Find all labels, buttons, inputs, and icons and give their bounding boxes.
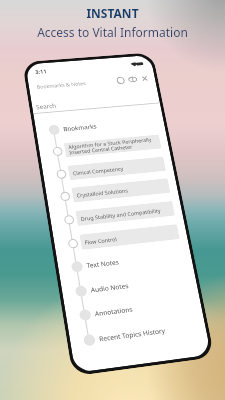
- staticText: Bookmarks: [63, 122, 97, 133]
- staticText: Algorithm for a Stuck Peripherally Inser…: [68, 136, 159, 156]
- button[interactable]: Text Notes: [57, 246, 192, 276]
- staticText: Search: [35, 101, 57, 111]
- button[interactable]: Drug Stability and Compatibility: [49, 199, 183, 230]
- button[interactable]: Recent Topics History: [69, 317, 207, 350]
- button[interactable]: Clinical Competency: [42, 155, 174, 184]
- staticText: Clinical Competency: [72, 165, 124, 176]
- button[interactable]: Algorithm for a Stuck Peripherally Inser…: [38, 133, 169, 161]
- button[interactable]: Search: [32, 93, 160, 114]
- staticText: Bookmarks & Notes: [36, 80, 86, 90]
- staticText: Recent Topics History: [98, 326, 167, 343]
- staticText: Text Notes: [86, 257, 120, 270]
- button[interactable]: Flow Control: [53, 222, 188, 254]
- button[interactable]: Audio Notes: [61, 269, 197, 301]
- staticText: Drug Stability and Compatibility: [80, 207, 161, 222]
- button[interactable]: Sort: [127, 75, 138, 84]
- staticText: Crystalloid Solutions: [76, 187, 129, 198]
- button[interactable]: Info: [115, 76, 126, 85]
- button[interactable]: Annotations: [65, 292, 202, 325]
- button[interactable]: Close: [139, 74, 150, 83]
- staticText: Flow Control: [84, 235, 118, 246]
- button[interactable]: Crystalloid Solutions: [45, 176, 178, 206]
- staticText: Access to Vital Information: [37, 24, 188, 40]
- staticText: 3:11: [35, 68, 47, 76]
- button[interactable]: Bookmarks: [35, 113, 165, 138]
- staticText: INSTANT: [86, 5, 139, 21]
- staticText: Audio Notes: [90, 281, 130, 294]
- staticText: Annotations: [94, 305, 134, 318]
